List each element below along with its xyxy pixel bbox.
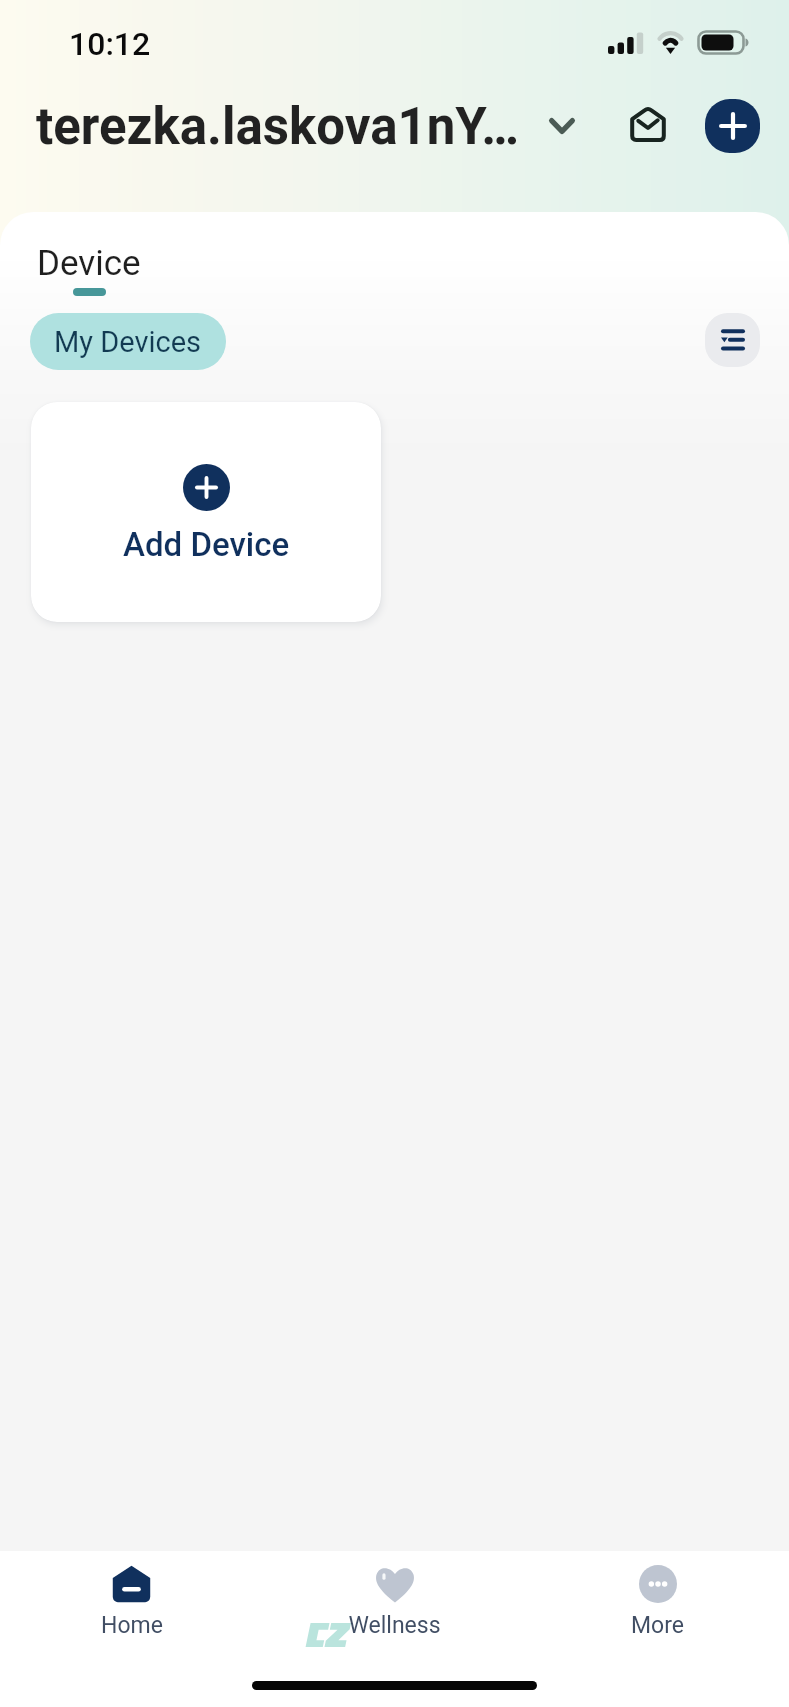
button[interactable]: Home: [0, 1565, 263, 1639]
staticText: More: [631, 1612, 684, 1639]
button[interactable]: Switch account: [538, 102, 586, 150]
button[interactable]: Add Device: [31, 402, 381, 622]
staticText: My Devices: [54, 325, 202, 359]
staticText: Add Device: [123, 525, 290, 564]
staticText: Device: [37, 243, 141, 284]
button[interactable]: Device: [37, 243, 141, 284]
button[interactable]: Sort and filter: [705, 313, 760, 367]
button[interactable]: Add: [705, 99, 760, 153]
staticText: Wellness: [348, 1612, 441, 1639]
staticText: Home: [101, 1612, 163, 1639]
button[interactable]: My Devices: [30, 313, 226, 370]
button[interactable]: More: [526, 1565, 789, 1639]
button[interactable]: terezka.laskova1nY…: [36, 97, 519, 157]
staticText: 10:12: [69, 25, 151, 63]
button[interactable]: Wellness: [263, 1565, 526, 1639]
staticText: terezka.laskova1nY…: [36, 97, 519, 157]
button[interactable]: Messages: [630, 106, 666, 142]
